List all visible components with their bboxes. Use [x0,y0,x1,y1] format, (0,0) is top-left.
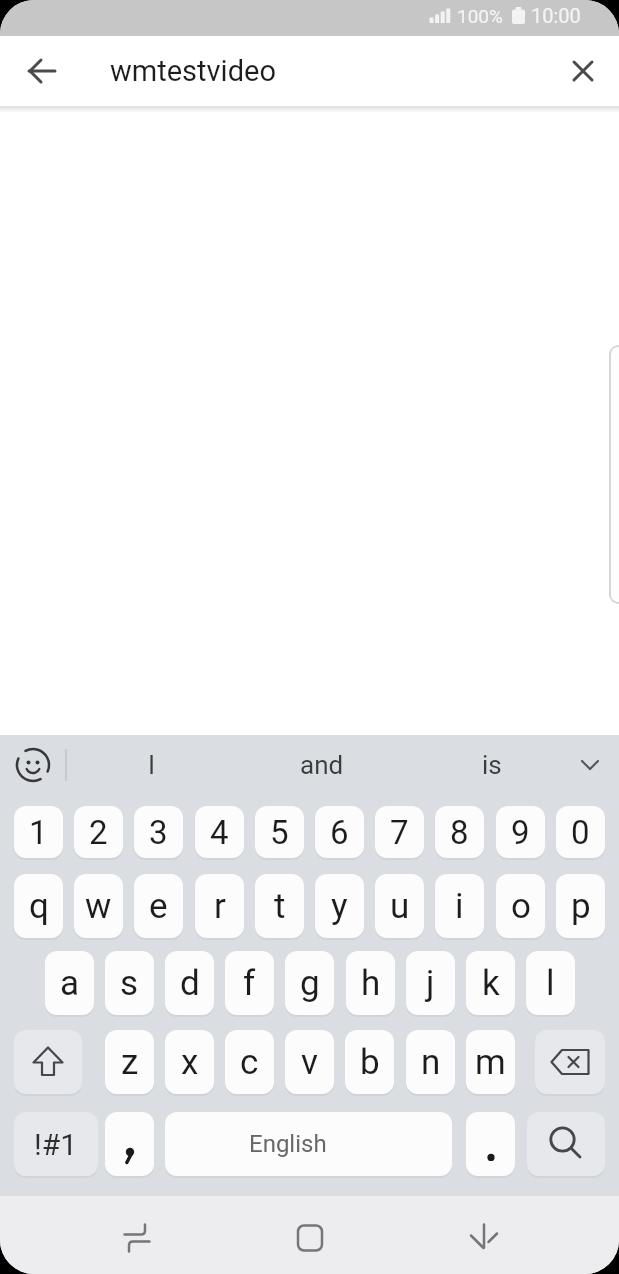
staticText: 7 [390,813,409,852]
button[interactable]: d [165,951,214,1015]
button[interactable]: k [466,951,515,1015]
button[interactable]: n [406,1030,455,1094]
button[interactable]: z [105,1030,154,1094]
button[interactable]: p [556,874,605,938]
staticText: j [426,963,435,1004]
button[interactable]: l [526,951,575,1015]
button[interactable]: English [165,1112,452,1176]
staticText: 10:00 [531,4,581,27]
button[interactable] [565,735,615,795]
staticText: x [181,1042,199,1083]
button[interactable] [609,345,619,604]
button[interactable] [535,1030,605,1094]
staticText: 5 [270,813,289,852]
button[interactable]: 3 [134,806,183,858]
button[interactable] [0,36,84,106]
staticText: wmtestvideo [110,54,276,88]
staticText: g [300,963,320,1004]
staticText: 2 [89,813,108,852]
button[interactable] [105,1112,154,1176]
staticText: f [243,963,256,1004]
staticText: w [85,886,112,927]
button[interactable]: t [255,874,304,938]
button[interactable]: v [285,1030,334,1094]
staticText: is [482,750,502,780]
button[interactable]: and [262,735,382,795]
button[interactable]: 0 [556,806,605,858]
button[interactable]: w [74,874,123,938]
staticText: k [482,963,500,1004]
button[interactable]: s [105,951,154,1015]
staticText: 9 [511,813,530,852]
button[interactable]: b [345,1030,394,1094]
button[interactable] [14,1030,82,1094]
staticText: b [360,1042,380,1083]
button[interactable]: j [406,951,455,1015]
button[interactable] [466,1112,515,1176]
button[interactable]: h [346,951,395,1015]
button[interactable] [0,735,66,795]
button[interactable] [107,1208,167,1268]
staticText: 6 [330,813,349,852]
staticText: z [121,1042,139,1083]
button[interactable]: f [225,951,274,1015]
button[interactable]: y [315,874,364,938]
button[interactable]: 2 [74,806,123,858]
staticText: and [300,750,344,780]
staticText: u [390,886,410,927]
button[interactable]: a [45,951,94,1015]
staticText: 0 [571,813,590,852]
staticText: 3 [149,813,168,852]
staticText: h [361,963,381,1004]
staticText: y [331,886,348,927]
button[interactable] [527,1112,605,1176]
staticText: o [511,886,531,927]
staticText: p [571,886,591,927]
button[interactable] [547,36,619,106]
staticText: l [546,963,555,1004]
staticText: m [475,1042,506,1083]
staticText: d [180,963,200,1004]
button[interactable]: 4 [195,806,244,858]
button[interactable]: 8 [435,806,484,858]
button[interactable]: I [92,735,212,795]
staticText: i [455,886,464,927]
staticText: 1 [29,813,48,852]
button[interactable]: e [134,874,183,938]
button[interactable]: u [375,874,424,938]
button[interactable] [454,1208,514,1268]
button[interactable]: 9 [496,806,545,858]
staticText: q [29,886,49,927]
staticText: I [148,750,156,780]
button[interactable]: 5 [255,806,304,858]
button[interactable]: 6 [315,806,364,858]
button[interactable]: g [285,951,334,1015]
button[interactable]: x [165,1030,214,1094]
staticText: e [149,886,168,927]
button[interactable]: o [496,874,545,938]
button[interactable]: 1 [14,806,63,858]
button[interactable]: m [466,1030,515,1094]
staticText: a [60,963,80,1004]
staticText: s [120,963,139,1004]
staticText: 100% [457,5,503,27]
staticText: 8 [450,813,469,852]
button[interactable]: is [432,735,552,795]
button[interactable]: c [225,1030,274,1094]
staticText: t [274,886,286,927]
staticText: n [421,1042,441,1083]
button[interactable]: 7 [375,806,424,858]
button[interactable]: q [14,874,63,938]
staticText: English [249,1130,327,1158]
button[interactable]: !#1 [14,1112,98,1176]
button[interactable] [280,1208,340,1268]
button[interactable]: r [195,874,244,938]
staticText: v [301,1042,318,1083]
button[interactable]: i [435,874,484,938]
staticText: 4 [210,813,229,852]
staticText: c [240,1042,259,1083]
staticText: !#1 [34,1127,78,1162]
staticText: r [214,886,226,927]
